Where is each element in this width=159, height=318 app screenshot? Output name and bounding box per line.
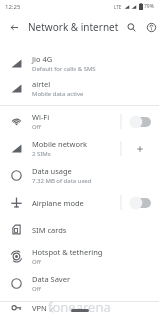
button[interactable]: Toggle xyxy=(129,115,151,129)
staticText: Network & internet xyxy=(28,20,119,34)
button[interactable]: Wi‑Fi xyxy=(0,108,159,135)
staticText: Default for calls & SMS xyxy=(32,65,96,73)
staticText: Off xyxy=(32,123,41,131)
button[interactable]: Data usage xyxy=(0,162,159,189)
button[interactable]: Toggle xyxy=(129,196,151,210)
staticText: Off xyxy=(32,285,41,293)
button[interactable]: Hotspot & tethering xyxy=(0,243,159,270)
staticText: 7.32 MB of data used xyxy=(32,177,92,185)
staticText: 2 SIMs xyxy=(32,150,51,158)
button[interactable]: Airplane mode xyxy=(0,189,159,216)
staticText: Mobile network xyxy=(32,139,88,149)
staticText: Jio 4G xyxy=(32,54,53,64)
staticText: 12:25 xyxy=(5,3,21,11)
staticText: LTE xyxy=(114,4,122,10)
staticText: Hotspot & tethering xyxy=(32,247,103,257)
staticText: VPN xyxy=(32,303,47,313)
button[interactable]: SIM cards xyxy=(0,216,159,243)
button[interactable]: Jio 4G xyxy=(0,51,159,76)
button[interactable]: Search xyxy=(119,15,143,39)
staticText: Off xyxy=(32,258,41,266)
staticText: fonearena xyxy=(48,298,111,316)
button[interactable]: VPN xyxy=(0,297,159,318)
staticText: airtel xyxy=(32,79,51,89)
button[interactable]: Back xyxy=(46,304,58,316)
button[interactable]: Add network xyxy=(132,141,148,157)
button[interactable]: airtel xyxy=(0,76,159,101)
staticText: 79% xyxy=(144,3,154,10)
staticText: Data Saver xyxy=(32,274,71,284)
staticText: SIM cards xyxy=(32,225,67,235)
button[interactable]: Help xyxy=(143,15,159,39)
button[interactable]: Home xyxy=(71,309,89,312)
staticText: Mobile data active xyxy=(32,90,84,98)
staticText: Wi‑Fi xyxy=(32,112,50,122)
button[interactable]: Mobile network xyxy=(0,135,159,162)
staticText: Data usage xyxy=(32,166,72,176)
button[interactable]: Data Saver xyxy=(0,270,159,297)
staticText: Airplane mode xyxy=(32,198,84,208)
button[interactable]: Back xyxy=(0,13,28,41)
